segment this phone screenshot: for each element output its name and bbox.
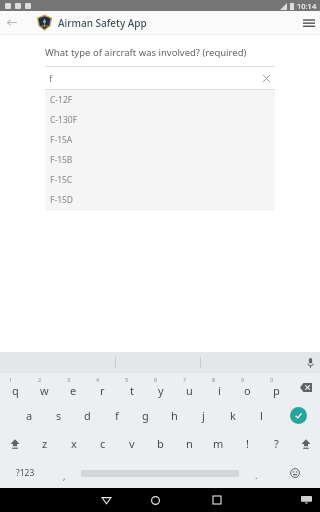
staticText: 5	[125, 376, 129, 383]
staticText: 3	[67, 376, 71, 383]
staticText: v	[129, 436, 135, 451]
button[interactable]: F-15A	[45, 130, 275, 150]
button[interactable]: j	[189, 401, 218, 429]
button[interactable]: Back	[94, 488, 118, 512]
staticText: 7	[183, 376, 187, 383]
button[interactable]: Backspace	[291, 373, 320, 401]
staticText: w	[40, 383, 49, 398]
staticText: b	[157, 436, 164, 451]
staticText: j	[202, 408, 205, 423]
staticText: t	[130, 383, 134, 398]
staticText: m	[213, 436, 224, 451]
button[interactable]: g	[131, 401, 160, 429]
button[interactable]: C-130F	[45, 110, 275, 130]
button[interactable]: Home	[143, 488, 167, 512]
button[interactable]: F-15B	[45, 150, 275, 170]
button[interactable]: Back	[0, 11, 23, 34]
staticText: r	[100, 383, 105, 398]
button[interactable]: .	[243, 458, 269, 488]
staticText: F-15D	[50, 194, 74, 206]
staticText: e	[70, 383, 77, 398]
button[interactable]: Voice input	[300, 353, 320, 373]
staticText: 2	[38, 376, 42, 383]
staticText: 0	[270, 376, 274, 383]
button[interactable]: 1	[0, 373, 30, 401]
staticText: u	[186, 383, 193, 398]
staticText: l	[260, 408, 263, 423]
button[interactable]: h	[160, 401, 189, 429]
button[interactable]: C-12F	[45, 90, 275, 110]
button[interactable]: ?123	[0, 458, 51, 488]
staticText: C-130F	[50, 114, 78, 126]
button[interactable]: a	[15, 401, 44, 429]
button[interactable]: s	[44, 401, 73, 429]
button[interactable]: Recent apps	[205, 488, 229, 512]
button[interactable]: Menu	[297, 11, 320, 34]
staticText: Airman Safety App	[58, 16, 147, 30]
button[interactable]: Shift	[0, 429, 30, 458]
staticText: s	[56, 408, 62, 423]
button[interactable]: Emoji	[269, 458, 320, 488]
staticText: g	[142, 408, 149, 423]
button[interactable]: v	[117, 429, 146, 458]
button[interactable]: c	[88, 429, 117, 458]
staticText: !	[246, 436, 249, 451]
staticText: q	[12, 383, 19, 398]
staticText: What type of aircraft was involved? (req…	[45, 46, 247, 59]
staticText: C-12F	[50, 94, 73, 106]
staticText: h	[171, 408, 178, 423]
button[interactable]: Hide keyboard	[295, 489, 317, 511]
staticText: f	[49, 72, 53, 84]
button[interactable]: !	[233, 429, 262, 458]
staticText: 8	[212, 376, 216, 383]
staticText: k	[230, 408, 236, 423]
staticText: n	[186, 436, 193, 451]
button[interactable]: 9	[233, 373, 262, 401]
staticText: d	[84, 408, 91, 423]
staticText: a	[26, 408, 33, 423]
button[interactable]: F-15D	[45, 190, 275, 210]
staticText: 10:14	[297, 1, 317, 11]
button[interactable]: Done	[276, 401, 320, 429]
button[interactable]: 6	[146, 373, 175, 401]
button[interactable]: F-15C	[45, 170, 275, 190]
staticText: o	[244, 383, 251, 398]
button[interactable]: n	[175, 429, 204, 458]
staticText: 9	[241, 376, 245, 383]
button[interactable]: 2	[30, 373, 59, 401]
button[interactable]: 3	[59, 373, 88, 401]
staticText: 4	[96, 376, 100, 383]
button[interactable]: 4	[88, 373, 117, 401]
button[interactable]: m	[204, 429, 233, 458]
button[interactable]: b	[146, 429, 175, 458]
button[interactable]: x	[59, 429, 88, 458]
staticText: F-15C	[50, 174, 73, 186]
staticText: ,	[63, 470, 66, 482]
button[interactable]: d	[73, 401, 102, 429]
staticText: y	[158, 383, 164, 398]
button[interactable]: f	[102, 401, 131, 429]
staticText: p	[273, 383, 280, 398]
button[interactable]: Clear	[257, 69, 275, 87]
button[interactable]: ,	[51, 458, 77, 488]
button[interactable]: f	[45, 67, 275, 89]
button[interactable]: z	[30, 429, 59, 458]
staticText: x	[71, 436, 77, 451]
button[interactable]: 5	[117, 373, 146, 401]
staticText: c	[100, 436, 106, 451]
button[interactable]: ?	[262, 429, 291, 458]
staticText: ?	[274, 436, 279, 451]
staticText: i	[218, 383, 221, 398]
staticText: F-15A	[50, 134, 73, 146]
staticText: ?123	[16, 467, 35, 479]
staticText: .	[255, 469, 258, 481]
button[interactable]: Shift	[291, 429, 320, 458]
button[interactable]: Space	[77, 458, 243, 488]
button[interactable]: 0	[262, 373, 291, 401]
staticText: f	[115, 408, 119, 423]
button[interactable]: l	[247, 401, 276, 429]
button[interactable]: 7	[175, 373, 204, 401]
button[interactable]: k	[218, 401, 247, 429]
staticText: 6	[154, 376, 158, 383]
button[interactable]: 8	[204, 373, 233, 401]
